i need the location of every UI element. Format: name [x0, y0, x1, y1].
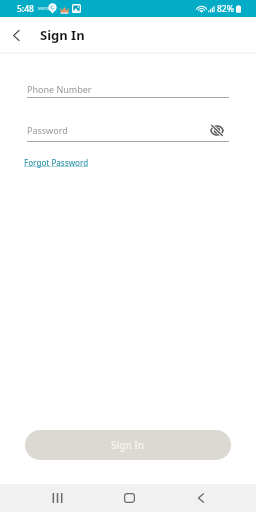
staticText: Sign In — [111, 438, 145, 452]
staticText: Password — [27, 124, 68, 136]
button[interactable]: Forgot Password — [24, 157, 89, 168]
staticText: 5:48 — [17, 3, 34, 15]
staticText: 82% — [217, 3, 234, 15]
button[interactable]: Back — [3, 22, 29, 48]
button[interactable]: Recent apps — [44, 485, 70, 511]
staticText: Phone Number — [27, 83, 92, 95]
button[interactable]: Sign In — [25, 430, 231, 460]
staticText: Sign In — [40, 26, 85, 44]
staticText: MSTG — [38, 6, 49, 11]
staticText: Forgot Password — [24, 157, 89, 168]
button[interactable]: Back — [188, 485, 214, 511]
button[interactable]: Home — [116, 485, 142, 511]
button[interactable]: Show password — [207, 120, 227, 140]
